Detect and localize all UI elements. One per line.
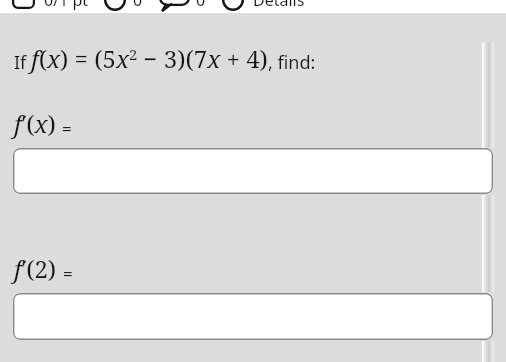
button[interactable]: Details bbox=[222, 0, 305, 11]
staticText: If bbox=[14, 50, 31, 75]
staticText: , find: bbox=[268, 50, 316, 75]
staticText: Details bbox=[253, 0, 305, 11]
staticText: f(x) = (5x2 − 3)(7x + 4) bbox=[31, 42, 268, 75]
button[interactable]: Points bbox=[12, 0, 89, 11]
staticText: f′(2) bbox=[14, 252, 57, 285]
staticText: = bbox=[62, 117, 72, 140]
button[interactable]: Comments bbox=[159, 0, 206, 11]
button[interactable]: Attempts bbox=[104, 0, 143, 11]
button[interactable]: Answer input bbox=[13, 293, 493, 340]
staticText: = bbox=[63, 262, 73, 285]
staticText: 0 bbox=[133, 0, 143, 11]
staticText: 0 bbox=[196, 0, 206, 11]
button[interactable]: Answer input bbox=[13, 148, 493, 194]
staticText: 0/1 pt bbox=[44, 0, 89, 11]
staticText: f′(x) bbox=[14, 107, 56, 140]
